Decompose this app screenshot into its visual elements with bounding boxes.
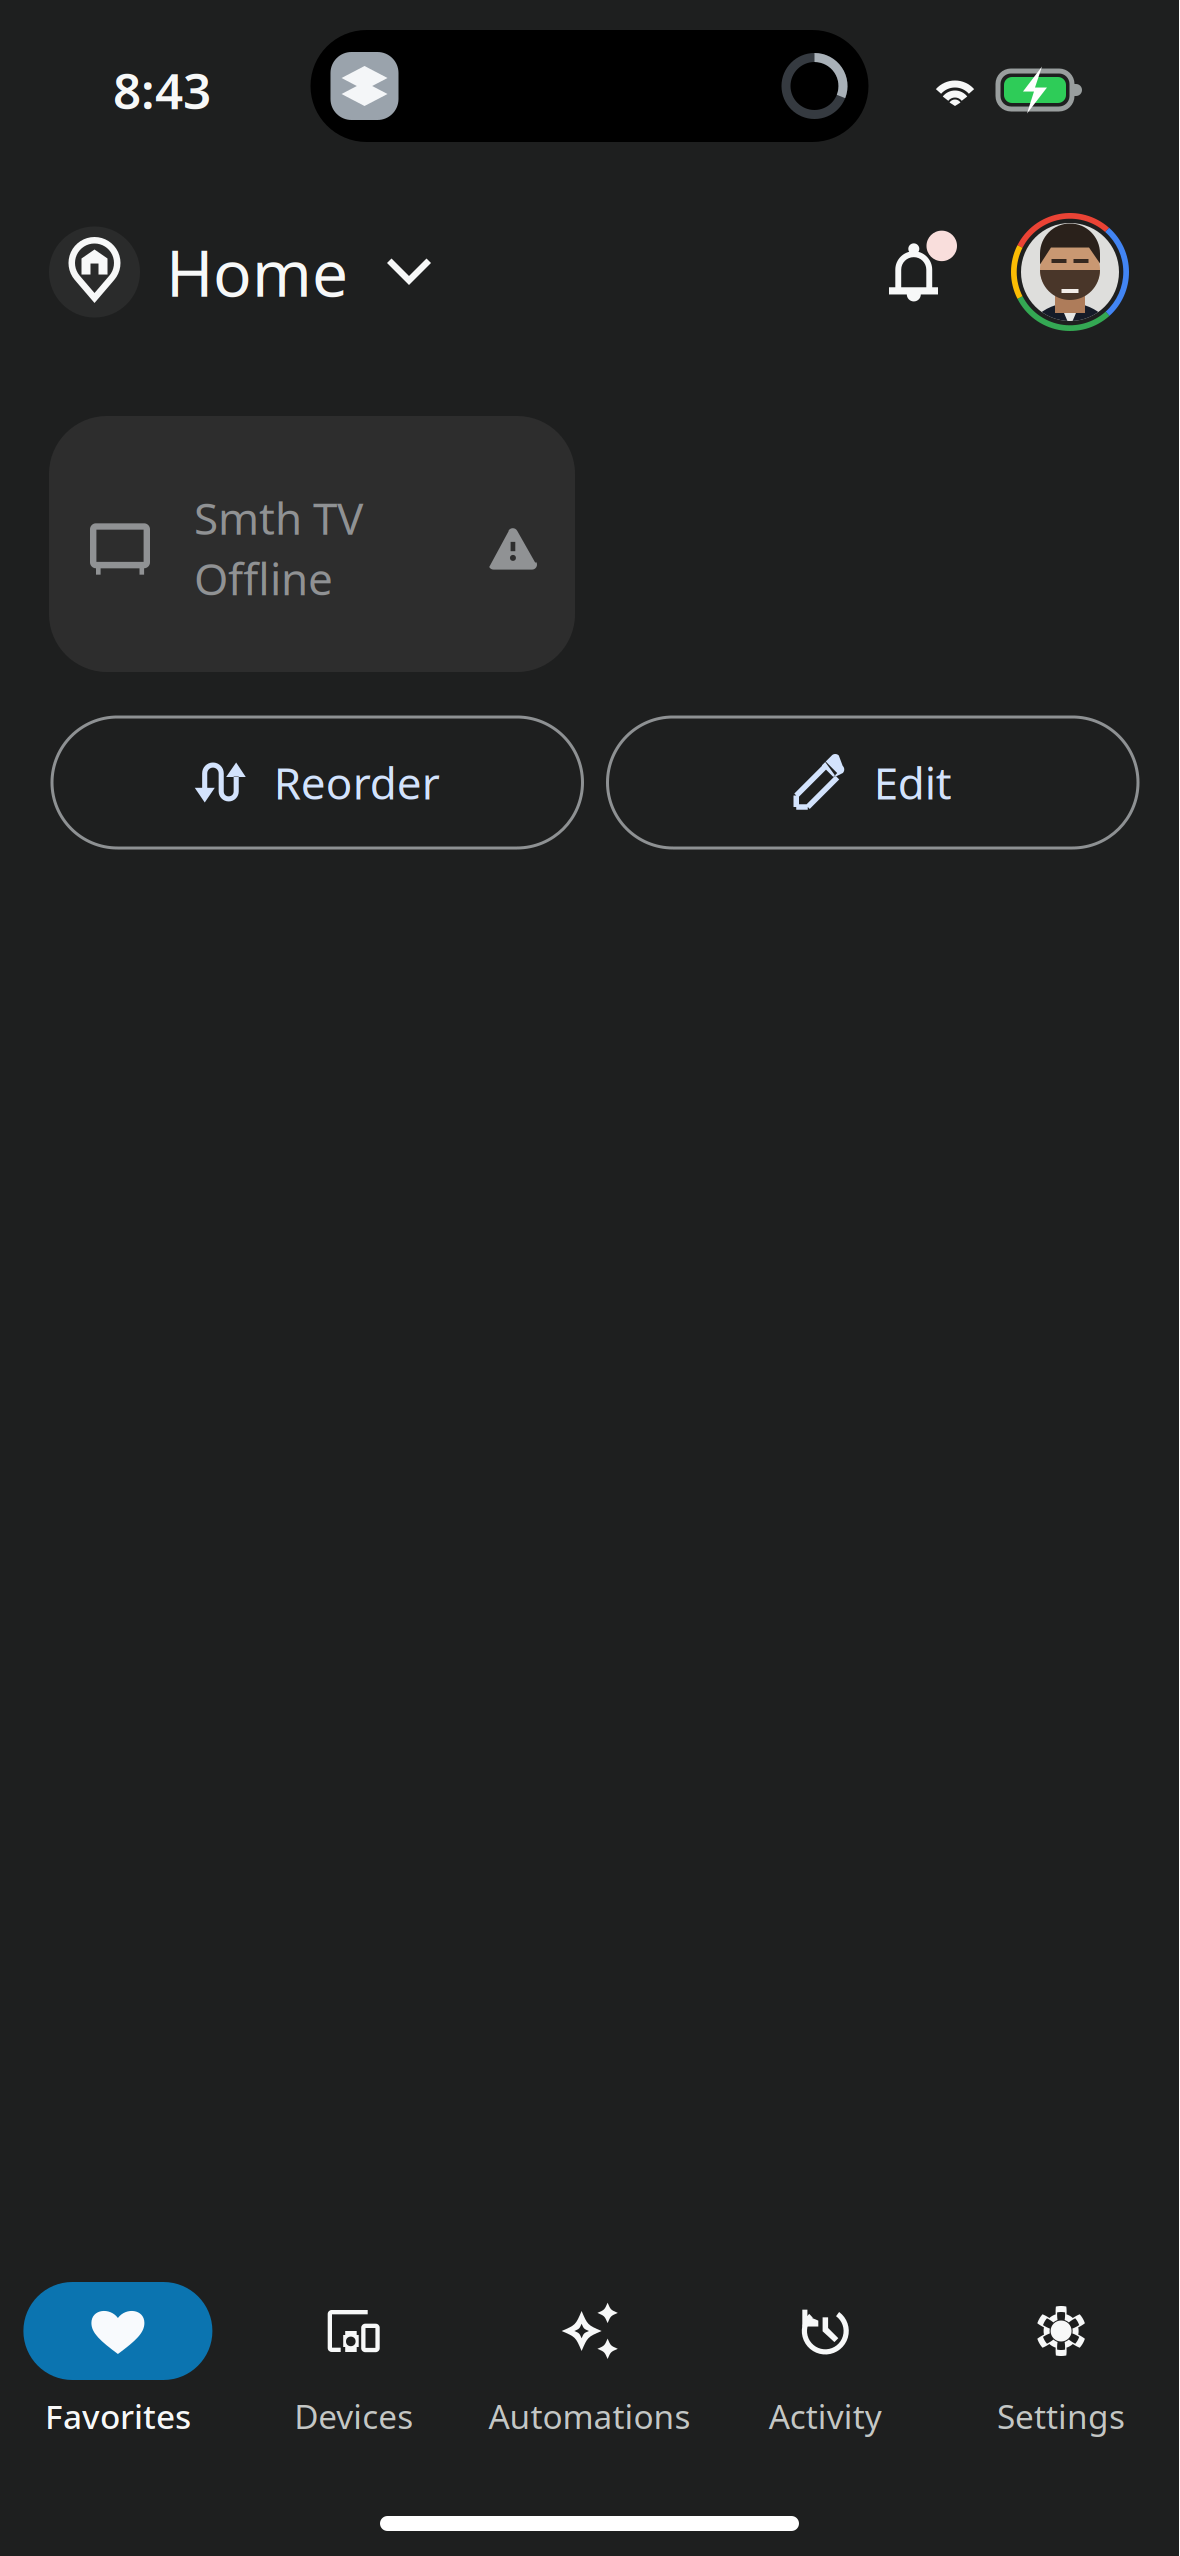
staticText: Edit bbox=[874, 753, 952, 812]
staticText: Favorites bbox=[45, 2394, 191, 2438]
button[interactable]: Edit bbox=[607, 717, 1138, 848]
button[interactable]: Reorder bbox=[52, 717, 582, 848]
button[interactable]: Account bbox=[1011, 213, 1129, 331]
staticText: Reorder bbox=[274, 753, 440, 812]
button[interactable]: Automations bbox=[472, 2282, 707, 2448]
staticText: Offline bbox=[194, 549, 333, 607]
button[interactable]: Settings bbox=[943, 2282, 1179, 2448]
button[interactable]: Favorites bbox=[0, 2282, 236, 2448]
staticText: Smth TV bbox=[194, 489, 363, 547]
staticText: Home bbox=[166, 229, 348, 314]
staticText: Activity bbox=[769, 2394, 882, 2438]
button[interactable]: Notifications bbox=[889, 216, 957, 318]
staticText: Automations bbox=[488, 2394, 690, 2438]
button[interactable]: Home bbox=[0, 208, 447, 325]
staticText: 8:43 bbox=[113, 57, 211, 123]
button[interactable]: Smth TV bbox=[49, 416, 575, 672]
staticText: Devices bbox=[294, 2394, 413, 2438]
staticText: Settings bbox=[997, 2394, 1125, 2438]
button[interactable]: Devices bbox=[236, 2282, 472, 2448]
button[interactable]: Activity bbox=[707, 2282, 943, 2448]
